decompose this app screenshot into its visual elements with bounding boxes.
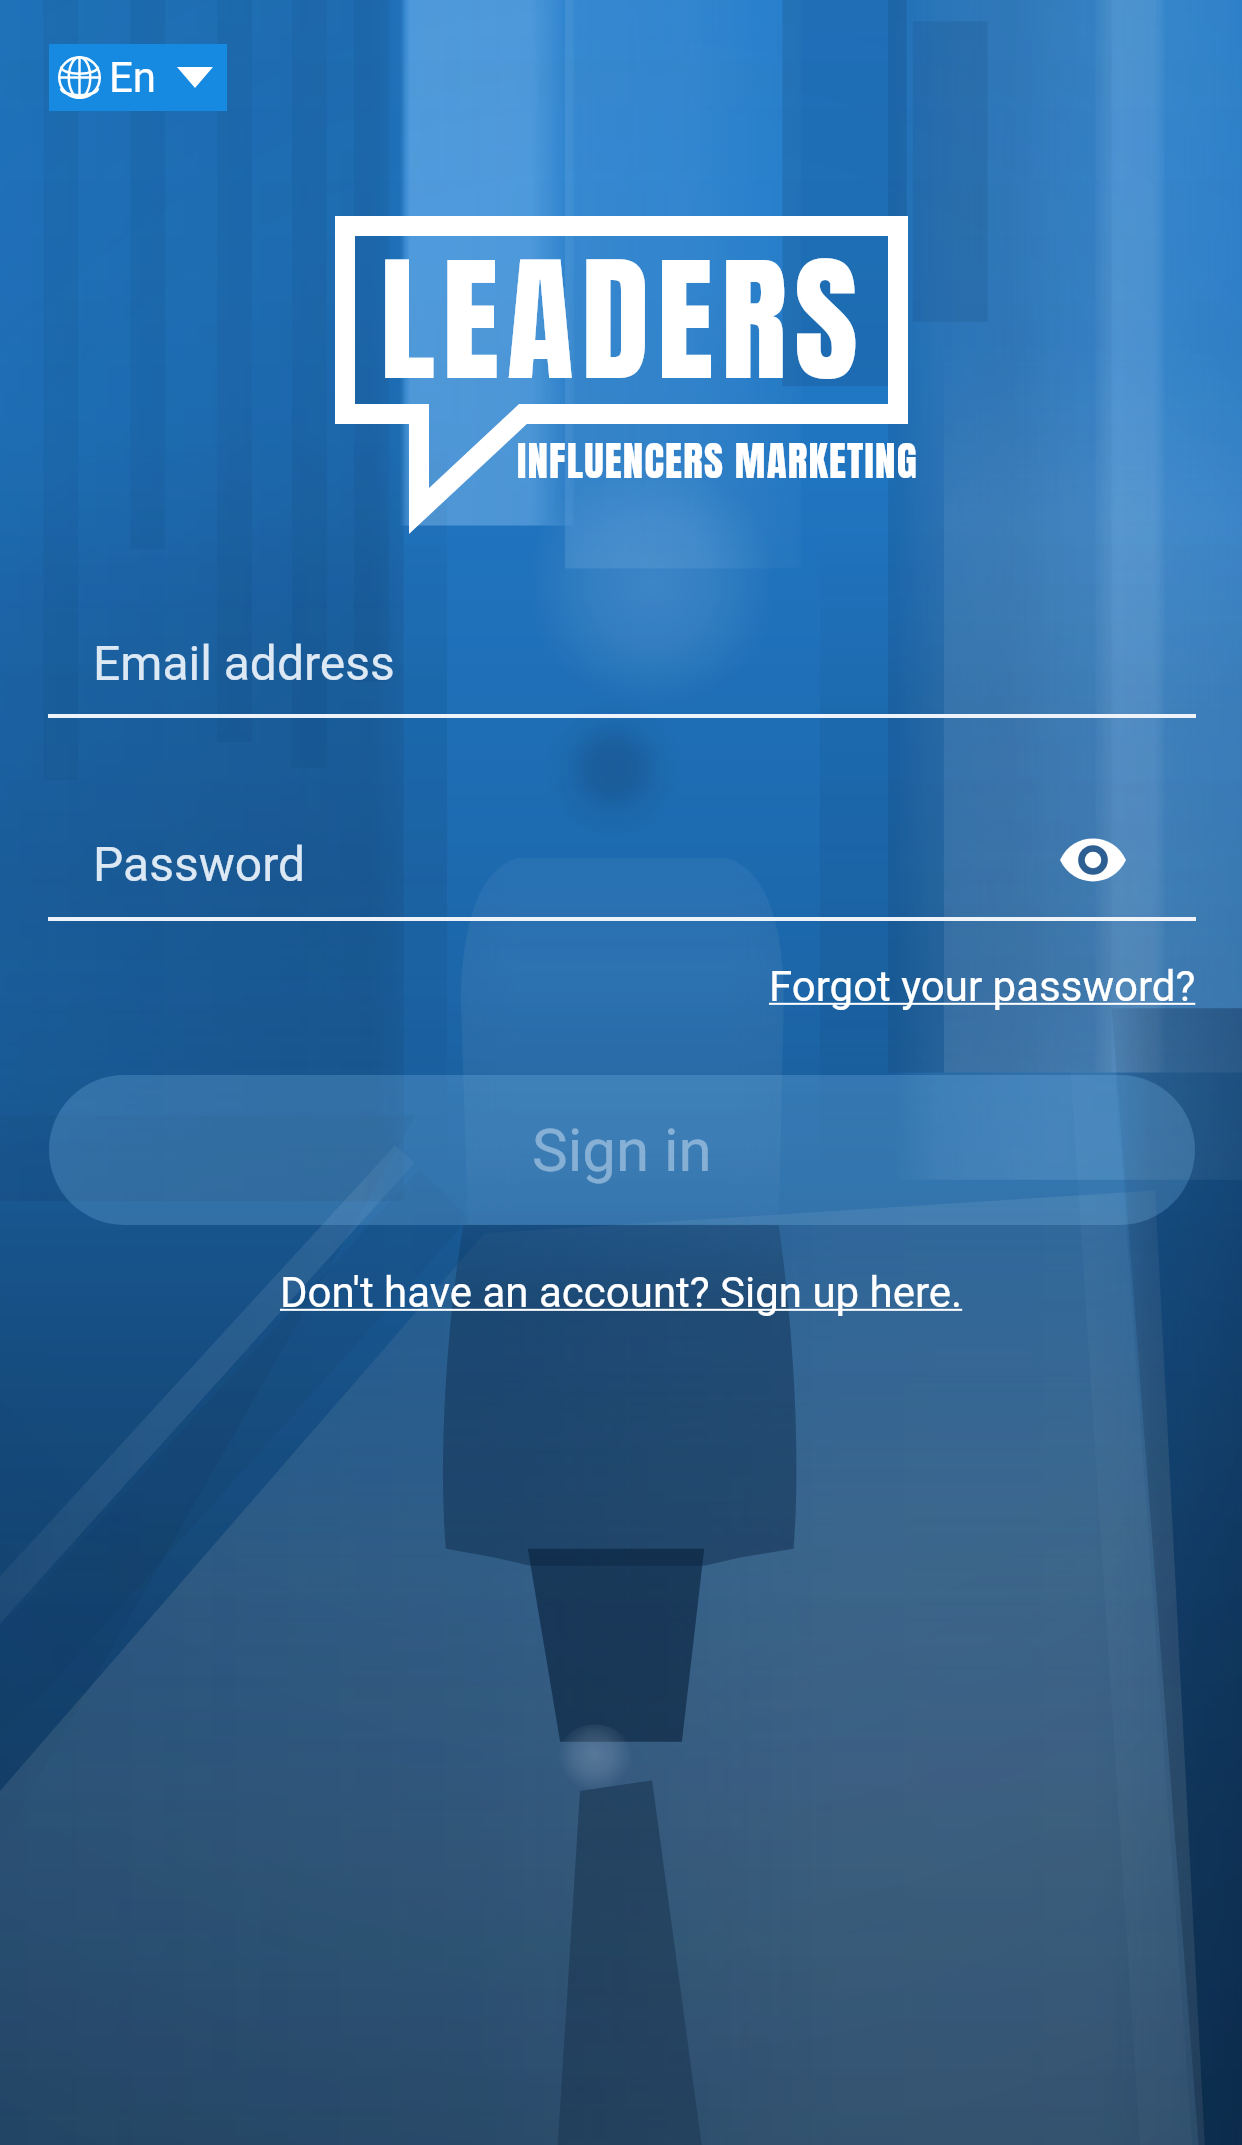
staticText: INFLUENCERS MARKETING: [517, 430, 918, 492]
button[interactable]: Sign in: [49, 1075, 1195, 1225]
staticText: Email address: [93, 635, 395, 691]
button[interactable]: Forgot your password?: [769, 962, 1196, 1011]
button[interactable]: Change language: [49, 44, 227, 111]
staticText: Sign in: [532, 1115, 712, 1185]
staticText: En: [109, 53, 157, 102]
staticText: Password: [93, 836, 306, 892]
staticText: LEADERS: [380, 216, 866, 424]
button[interactable]: Show password: [1049, 816, 1137, 904]
button[interactable]: Don't have an account? Sign up here.: [280, 1268, 963, 1317]
